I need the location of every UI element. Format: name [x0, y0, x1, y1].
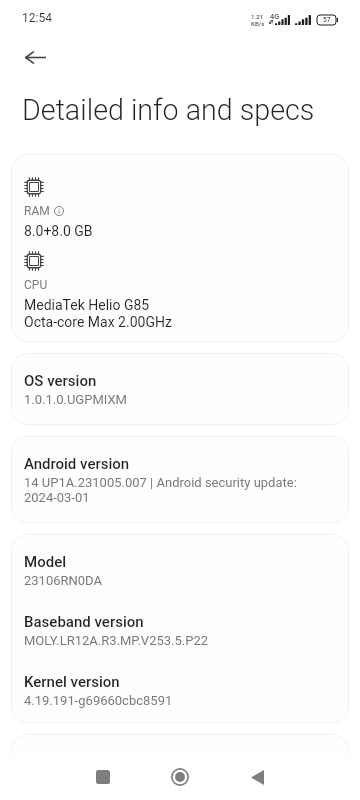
staticText: 14 UP1A.231005.007 | Android security up… [24, 475, 297, 505]
staticText: 57 [323, 16, 331, 24]
staticText: 23106RN0DA [24, 573, 102, 588]
staticText: Model [24, 553, 67, 571]
staticText: Baseband version [24, 613, 144, 631]
staticText: 1.0.1.0.UGPMIXM [24, 392, 127, 407]
button[interactable]: RAM [11, 154, 349, 342]
staticText: 1.21 [251, 13, 264, 20]
button[interactable]: OS version [11, 353, 349, 425]
button[interactable]: Android version [11, 436, 349, 523]
staticText: KB/s [251, 20, 265, 27]
staticText: 12:54 [22, 11, 52, 25]
button[interactable]: Recents [79, 754, 127, 800]
staticText: MOLY.LR12A.R3.MP.V253.5.P22 [24, 633, 209, 648]
button[interactable]: Model [11, 534, 349, 723]
staticText: Kernel version [24, 673, 120, 691]
button[interactable]: Back [14, 36, 56, 78]
staticText: 4.19.191-g69660cbc8591 [24, 693, 173, 708]
staticText: MediaTek Helio G85 Octa-core Max 2.00GHz [24, 297, 172, 331]
staticText: CPU [24, 278, 48, 292]
staticText: 4G [270, 12, 280, 21]
button[interactable]: Home [156, 754, 204, 800]
button[interactable] [11, 734, 349, 800]
staticText: OS version [24, 372, 97, 390]
staticText: Android version [24, 455, 130, 473]
staticText: Detailed info and specs [22, 93, 315, 127]
staticText: 8.0+8.0 GB [24, 223, 93, 239]
button[interactable]: Back [233, 754, 281, 800]
staticText: RAM [24, 204, 50, 218]
